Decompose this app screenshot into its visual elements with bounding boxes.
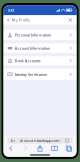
button[interactable]: Page settings [10,138,16,143]
button[interactable]: Tabs [64,144,73,152]
button[interactable]: Bank Accounts [3,56,76,65]
button[interactable]: Back [6,144,15,152]
staticText: Personal Information [15,32,51,38]
staticText: secure.bankapp.com [24,138,60,143]
staticText: Bank Accounts [15,58,41,63]
staticText: Identity Verification [15,72,47,77]
button[interactable]: Bookmarks [50,144,59,152]
button[interactable]: Forward [21,144,30,152]
staticText: Account Information [15,45,50,51]
button[interactable]: Personal Information [3,30,76,40]
button[interactable]: Share [35,144,44,152]
staticText: Aa [10,138,15,143]
button[interactable]: Identity Verification [3,69,76,80]
staticText: 9:41 [7,8,14,13]
button[interactable]: Account Information [3,43,76,53]
button[interactable]: My Profile [3,15,76,25]
staticText: My Profile [12,17,30,23]
button[interactable]: Reload [64,138,70,143]
